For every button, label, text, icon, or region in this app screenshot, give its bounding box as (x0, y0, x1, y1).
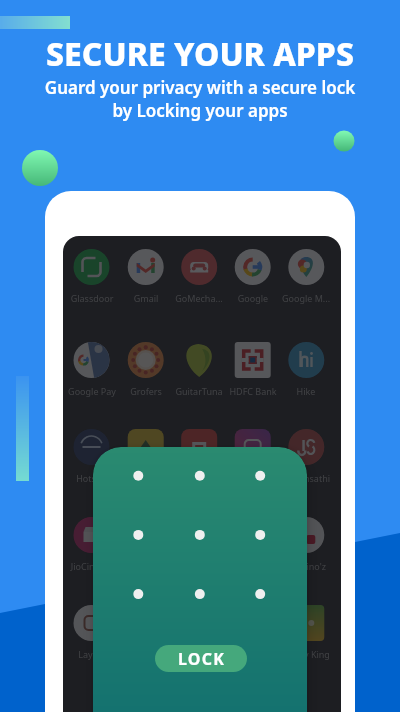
staticText: JioCinema (63, 560, 122, 572)
staticText: ICICI (223, 472, 283, 484)
staticText: Hike (276, 385, 336, 397)
staticText: HT (169, 472, 229, 484)
staticText: Lenskart (116, 648, 176, 660)
staticText: GuitarTuna (169, 385, 229, 397)
staticText: LinkedIn (169, 648, 229, 660)
staticText: HDFC Bank (223, 385, 283, 397)
staticText: Google M... (276, 292, 336, 304)
staticText: LOCK (178, 648, 225, 670)
staticText: Ludo (223, 648, 283, 660)
staticText: Housing (116, 472, 176, 484)
staticText: Jeevansathi (276, 472, 336, 484)
button[interactable]: LOCK (155, 645, 247, 672)
staticText: Guard your privacy with a secure lock by… (0, 76, 400, 122)
staticText: Google (223, 292, 283, 304)
staticText: Gmail (116, 292, 176, 304)
staticText: Hotstar (63, 472, 122, 484)
staticText: Domino'z (276, 560, 336, 572)
staticText: Glassdoor (63, 292, 122, 304)
staticText: Candy King (276, 648, 336, 660)
staticText: Layers (63, 648, 122, 660)
staticText: Google Pay (63, 385, 122, 397)
staticText: GoMecha... (169, 292, 229, 304)
staticText: Grofers (116, 385, 176, 397)
staticText: SECURE YOUR APPS (0, 32, 400, 76)
